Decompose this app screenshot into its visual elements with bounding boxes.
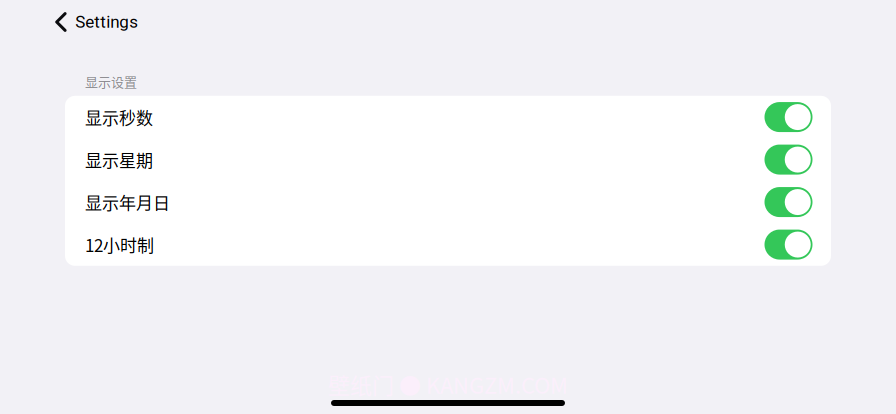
button[interactable]: 显示年月日 [65,181,831,223]
button[interactable]: 显示星期 [65,138,831,181]
staticText: 显示秒数 [85,105,153,129]
staticText: 显示设置 [85,72,137,91]
staticText: 壁纸门 ● KANGZM.COM [328,368,568,400]
button[interactable]: 12小时制 [65,223,831,266]
button[interactable]: 显示秒数 [65,96,831,138]
staticText: 12小时制 [85,232,154,257]
staticText: 显示星期 [85,147,153,172]
staticText: Settings [75,12,138,32]
staticText: 显示年月日 [85,190,170,214]
button[interactable]: Back to Settings [0,0,154,44]
